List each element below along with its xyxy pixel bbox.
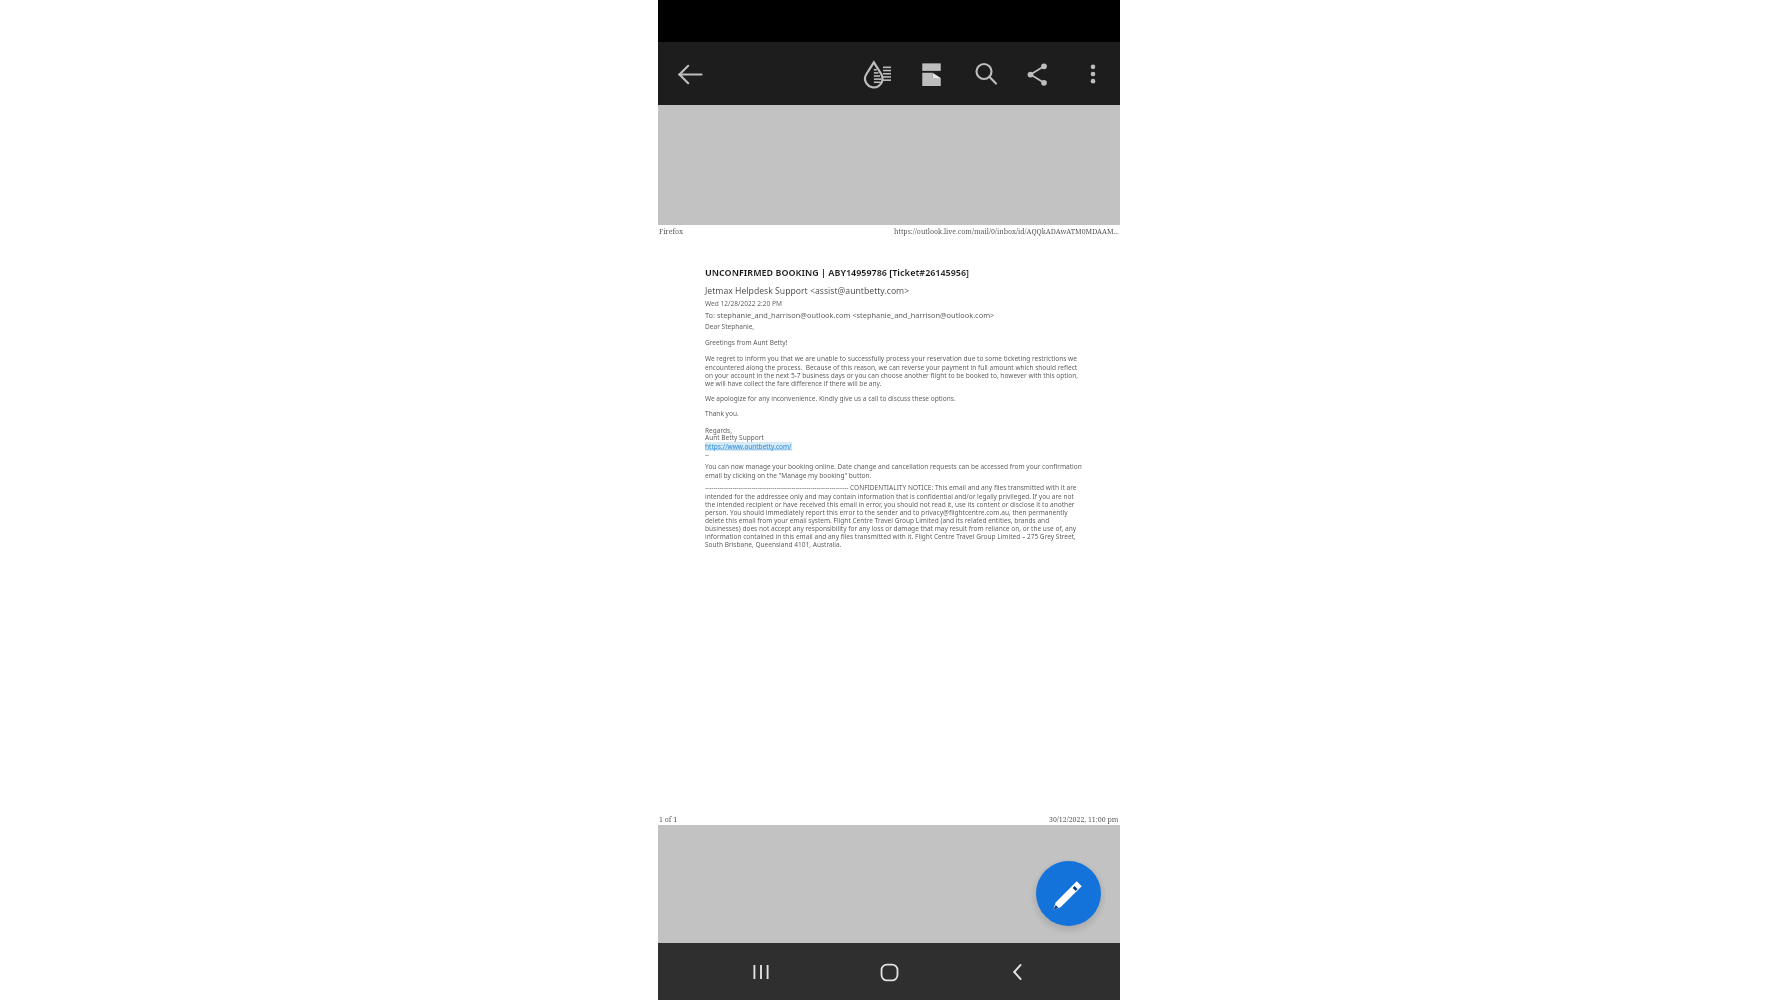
button[interactable]: Fit page <box>909 55 947 93</box>
button[interactable]: Back <box>992 946 1044 998</box>
button[interactable]: Adjust contrast <box>858 55 896 93</box>
button[interactable]: Share <box>1018 55 1056 93</box>
staticText: 1 of 1 <box>659 815 678 825</box>
staticText: Thank you. <box>705 409 739 418</box>
button[interactable]: Compose <box>1036 861 1101 926</box>
staticText: We apologize for any inconvenience. Kind… <box>705 394 956 403</box>
button[interactable]: Home <box>863 946 915 998</box>
button[interactable]: More options <box>1074 55 1112 93</box>
staticText: Jetmax Helpdesk Support <assist@auntbett… <box>705 285 910 297</box>
staticText: You can now manage your booking online. … <box>705 462 1085 480</box>
staticText: To: stephanie_and_harrison@outlook.com <… <box>705 310 995 320</box>
staticText: Aunt Betty Support <box>705 433 764 442</box>
staticText: -- <box>705 450 710 459</box>
staticText: Dear Stephanie, <box>705 322 755 331</box>
staticText: Greetings from Aunt Betty! <box>705 338 788 347</box>
staticText: Firefox <box>659 227 684 237</box>
staticText: Regards, <box>705 426 732 435</box>
staticText: https://outlook.live.com/mail/0/inbox/id… <box>894 227 1119 237</box>
staticText: https://www.auntbetty.com/ <box>705 442 792 451</box>
staticText: We regret to inform you that we are unab… <box>705 354 1085 388</box>
button[interactable]: Back <box>671 55 709 93</box>
staticText: Wed 12/28/2022 2:20 PM <box>705 299 783 308</box>
staticText: 30/12/2022, 11:00 pm <box>1049 815 1119 825</box>
button[interactable]: Search <box>967 55 1005 93</box>
staticText: UNCONFIRMED BOOKING | ABY14959786 [Ticke… <box>705 266 969 278</box>
button[interactable]: Recent apps <box>735 946 787 998</box>
staticText: ----------------------------------------… <box>705 483 1085 549</box>
